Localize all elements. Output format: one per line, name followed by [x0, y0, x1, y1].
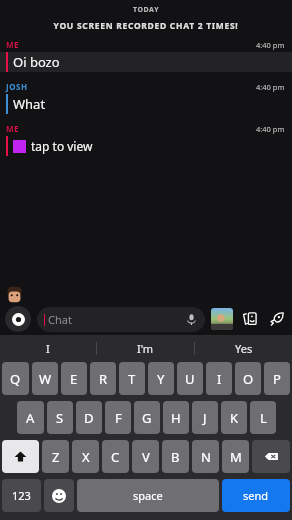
button[interactable]: C [102, 440, 129, 473]
button[interactable]: 123 [2, 479, 41, 512]
button[interactable]: S [47, 401, 73, 434]
staticText: I'm [137, 341, 154, 356]
staticText: N [201, 448, 211, 466]
button[interactable]: P [264, 362, 290, 395]
button[interactable]: Chat [37, 307, 205, 332]
staticText: tap to view [31, 138, 93, 154]
button[interactable]: I'm [97, 335, 194, 362]
staticText: O [243, 370, 254, 388]
staticText: Oi bozo [13, 53, 60, 71]
staticText: C [111, 448, 120, 466]
button[interactable]: V [132, 440, 159, 473]
button[interactable]: Y [148, 362, 174, 395]
staticText: ME [6, 39, 20, 50]
button[interactable]: Camera [5, 306, 31, 332]
button[interactable]: Q [2, 362, 29, 395]
button[interactable]: A [17, 401, 44, 434]
staticText: J [203, 409, 207, 427]
button[interactable]: Stickers [240, 309, 260, 329]
staticText: Y [157, 370, 165, 388]
button[interactable]: E [61, 362, 87, 395]
button[interactable]: Backspace [252, 440, 290, 473]
button[interactable]: tap to view [0, 136, 292, 156]
button[interactable]: I [206, 362, 232, 395]
staticText: V [142, 448, 150, 466]
staticText: K [230, 409, 239, 427]
staticText: G [142, 409, 152, 427]
button[interactable]: send [222, 479, 290, 512]
staticText: 4:40 pm [256, 82, 285, 92]
button[interactable]: W [32, 362, 58, 395]
staticText: 123 [12, 488, 31, 503]
staticText: send [243, 488, 269, 503]
staticText: Chat [48, 312, 72, 327]
staticText: I [46, 341, 50, 356]
staticText: Q [10, 370, 21, 388]
button[interactable]: K [221, 401, 247, 434]
button[interactable]: M [222, 440, 249, 473]
staticText: X [82, 448, 90, 466]
button[interactable]: I [0, 335, 96, 362]
button[interactable]: Z [42, 440, 69, 473]
button[interactable]: L [250, 401, 276, 434]
button[interactable]: Yes [195, 335, 292, 362]
staticText: ME [6, 123, 20, 134]
staticText: T [128, 370, 136, 388]
staticText: I [217, 370, 222, 388]
staticText: Z [52, 448, 60, 466]
button[interactable]: Oi bozo [0, 52, 292, 72]
staticText: YOU SCREEN RECORDED CHAT 2 TIMES! [0, 20, 292, 32]
staticText: P [273, 370, 281, 388]
staticText: space [133, 488, 163, 503]
button[interactable]: Send to [267, 309, 287, 329]
button[interactable]: R [90, 362, 116, 395]
staticText: W [39, 370, 52, 388]
button[interactable]: T [119, 362, 145, 395]
button[interactable]: Emoji [44, 479, 74, 512]
button[interactable]: space [77, 479, 219, 512]
staticText: F [115, 409, 122, 427]
staticText: D [84, 409, 94, 427]
staticText: S [56, 409, 64, 427]
staticText: JOSH [6, 81, 28, 92]
button[interactable]: X [72, 440, 99, 473]
staticText: M [230, 448, 242, 466]
button[interactable]: Gallery [211, 308, 233, 330]
staticText: L [260, 409, 267, 427]
staticText: Yes [235, 341, 253, 356]
button[interactable]: J [192, 401, 218, 434]
button[interactable]: N [192, 440, 219, 473]
staticText: What [13, 95, 46, 113]
button[interactable]: G [134, 401, 160, 434]
staticText: H [171, 409, 181, 427]
staticText: 4:40 pm [256, 124, 285, 134]
button[interactable]: B [162, 440, 189, 473]
staticText: 4:40 pm [256, 40, 285, 50]
button[interactable]: Shift [2, 440, 39, 473]
button[interactable]: O [235, 362, 261, 395]
button[interactable]: F [105, 401, 131, 434]
staticText: B [171, 448, 180, 466]
button[interactable]: D [76, 401, 102, 434]
button[interactable]: H [163, 401, 189, 434]
button[interactable]: What [0, 94, 292, 114]
staticText: A [26, 409, 35, 427]
staticText: U [185, 370, 195, 388]
staticText: E [70, 370, 78, 388]
button[interactable]: U [177, 362, 203, 395]
staticText: R [99, 370, 108, 388]
staticText: TODAY [0, 5, 292, 15]
